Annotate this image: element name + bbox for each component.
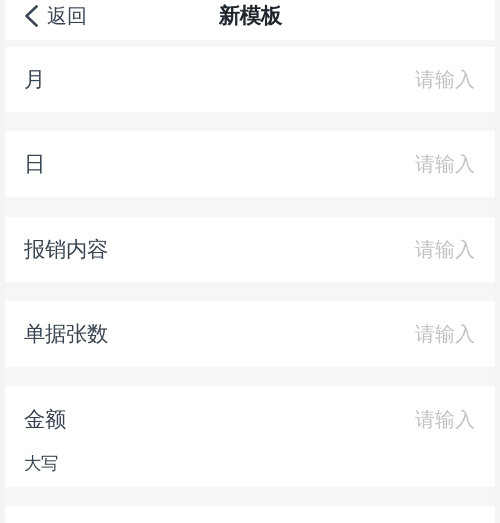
staticText: 请输入: [415, 152, 475, 176]
staticText: 日: [24, 151, 45, 177]
button[interactable]: 单据张数: [5, 301, 495, 367]
staticText: 新模板: [218, 3, 281, 29]
staticText: 大写: [24, 453, 58, 474]
button[interactable]: 返回: [5, 0, 101, 32]
staticText: 请输入: [415, 237, 475, 262]
staticText: 金额: [24, 406, 66, 433]
staticText: 返回: [47, 4, 87, 28]
staticText: 请输入: [415, 322, 475, 346]
staticText: 请输入: [415, 67, 475, 92]
button[interactable]: 金额: [5, 386, 495, 487]
button[interactable]: 月: [5, 47, 495, 112]
button[interactable]: 报销内容: [5, 217, 495, 282]
staticText: 月: [24, 66, 45, 93]
button[interactable]: 日: [5, 131, 495, 197]
staticText: 单据张数: [24, 321, 108, 347]
staticText: 请输入: [415, 407, 475, 432]
staticText: 报销内容: [24, 236, 108, 263]
